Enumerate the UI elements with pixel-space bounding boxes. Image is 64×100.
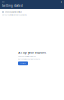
staticText: Continue	[20, 62, 26, 64]
staticText: personalise your workspace.	[18, 58, 40, 60]
staticText: 9:41	[2, 1, 5, 3]
staticText: Here are a few tips to help you get goin…	[2, 14, 27, 16]
staticText: Getting started	[2, 4, 23, 7]
staticText: Set up your account	[18, 51, 46, 54]
button[interactable]: Continue	[18, 61, 28, 65]
staticText: lıl ▮	[61, 1, 62, 3]
staticText: Choose a plan to continue	[5, 11, 22, 13]
staticText: Add your details so we can	[18, 55, 36, 57]
